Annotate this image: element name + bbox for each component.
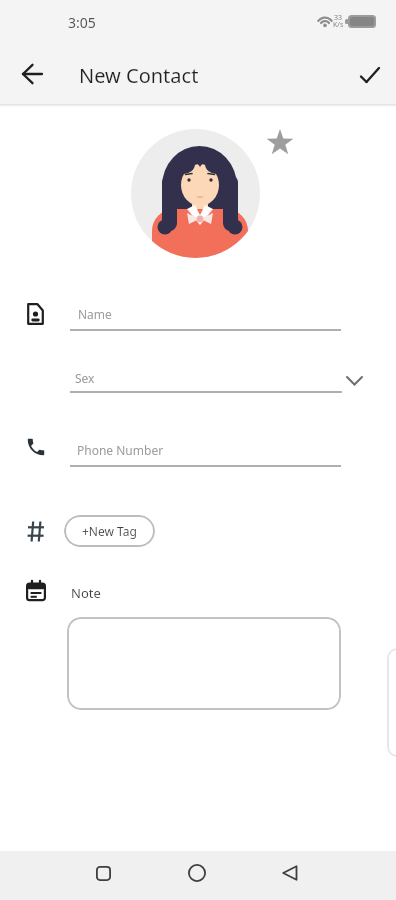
button[interactable]	[275, 858, 305, 888]
staticText: Sex	[75, 370, 95, 386]
staticText: Phone Number	[77, 442, 164, 458]
staticText: 3:05	[68, 13, 96, 32]
button[interactable]	[182, 858, 212, 888]
button[interactable]	[88, 858, 118, 888]
button[interactable]: Phone Number	[70, 432, 341, 468]
staticText: New Contact	[79, 62, 199, 89]
staticText: K/s	[333, 20, 344, 30]
staticText: 33	[334, 13, 343, 23]
button[interactable]: Sex	[70, 360, 342, 394]
staticText: +New Tag	[82, 523, 137, 539]
button[interactable]: +New Tag	[64, 515, 155, 547]
button[interactable]	[131, 129, 260, 258]
staticText: Name	[78, 306, 112, 322]
button[interactable]	[67, 617, 341, 710]
button[interactable]	[13, 55, 53, 95]
staticText: Note	[71, 584, 101, 602]
button[interactable]	[350, 55, 390, 95]
button[interactable]: Name	[70, 296, 341, 332]
